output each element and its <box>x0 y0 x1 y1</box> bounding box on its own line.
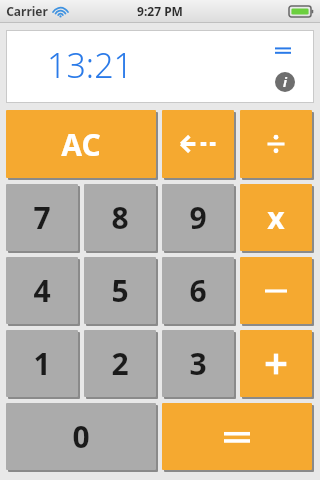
button[interactable]: 7 <box>6 184 78 251</box>
button[interactable]: 5 <box>84 257 156 324</box>
button[interactable]: 0 <box>6 403 156 470</box>
button[interactable]: Plus <box>240 330 312 397</box>
staticText: 13:21 <box>47 42 133 88</box>
staticText: AC <box>61 124 101 165</box>
staticText: 6 <box>189 270 207 311</box>
button[interactable]: AC <box>6 110 156 178</box>
staticText: 2 <box>111 343 129 384</box>
staticText: i <box>283 73 287 91</box>
button[interactable]: Equals indicator <box>275 45 291 56</box>
staticText: x <box>267 197 285 238</box>
staticText: 3 <box>189 343 207 384</box>
button[interactable]: Backspace <box>162 110 234 178</box>
button[interactable]: 8 <box>84 184 156 251</box>
staticText: 8 <box>111 197 129 238</box>
button[interactable]: 1 <box>6 330 78 397</box>
button[interactable]: 6 <box>162 257 234 324</box>
staticText: 5 <box>111 270 129 311</box>
button[interactable]: Info <box>275 72 295 92</box>
button[interactable]: Multiply <box>240 184 312 251</box>
button[interactable]: 4 <box>6 257 78 324</box>
button[interactable]: 2 <box>84 330 156 397</box>
button[interactable]: Divide <box>240 110 312 178</box>
staticText: 9:27 PM <box>137 3 183 19</box>
button[interactable]: 9 <box>162 184 234 251</box>
staticText: 1 <box>33 343 51 384</box>
staticText: 9 <box>189 197 207 238</box>
staticText: Carrier <box>6 3 48 19</box>
staticText: 0 <box>72 416 90 457</box>
button[interactable]: 3 <box>162 330 234 397</box>
staticText: 7 <box>33 197 51 238</box>
button[interactable]: Minus <box>240 257 312 324</box>
button[interactable]: Equals <box>162 403 312 470</box>
staticText: 4 <box>33 270 51 311</box>
